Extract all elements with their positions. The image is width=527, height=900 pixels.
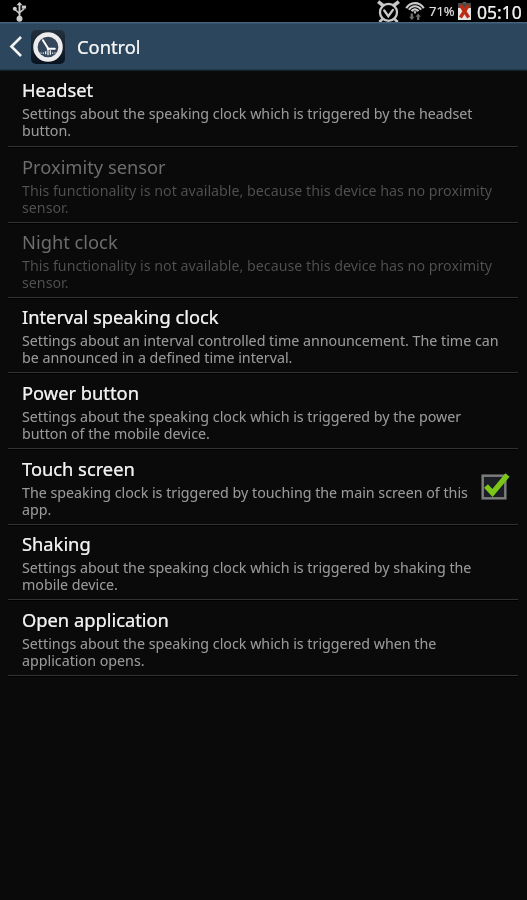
staticText: Control bbox=[77, 34, 141, 59]
button[interactable]: Open application bbox=[0, 601, 527, 675]
staticText: Settings about an interval controlled ti… bbox=[22, 331, 500, 367]
staticText: Settings about the speaking clock which … bbox=[22, 104, 500, 140]
staticText: Shaking bbox=[22, 531, 91, 556]
button[interactable]: Power button bbox=[0, 374, 527, 448]
staticText: Night clock bbox=[22, 229, 118, 254]
staticText: Settings about the speaking clock which … bbox=[22, 634, 500, 670]
button[interactable]: Interval speaking clock bbox=[0, 299, 527, 372]
button[interactable]: Shaking bbox=[0, 526, 527, 599]
button[interactable]: Proximity sensor bbox=[0, 148, 527, 222]
staticText: Settings about the speaking clock which … bbox=[22, 558, 500, 594]
staticText: Headset bbox=[22, 77, 94, 102]
staticText: The speaking clock is triggered by touch… bbox=[22, 483, 470, 519]
button[interactable]: Touch screen bbox=[0, 450, 527, 524]
staticText: Settings about the speaking clock which … bbox=[22, 407, 500, 443]
staticText: This functionality is not available, bec… bbox=[22, 181, 500, 217]
button[interactable]: Headset bbox=[0, 71, 527, 146]
staticText: Open application bbox=[22, 607, 169, 632]
staticText: Power button bbox=[22, 380, 139, 405]
staticText: Touch screen bbox=[22, 456, 135, 481]
button[interactable]: Navigate up bbox=[0, 22, 527, 71]
staticText: Interval speaking clock bbox=[22, 304, 219, 329]
staticText: 71% bbox=[429, 2, 455, 20]
button[interactable]: Night clock bbox=[0, 224, 527, 297]
staticText: 05:10 bbox=[477, 0, 522, 22]
staticText: This functionality is not available, bec… bbox=[22, 256, 500, 292]
staticText: Proximity sensor bbox=[22, 154, 166, 179]
button[interactable]: Toggle touch screen bbox=[478, 471, 510, 503]
